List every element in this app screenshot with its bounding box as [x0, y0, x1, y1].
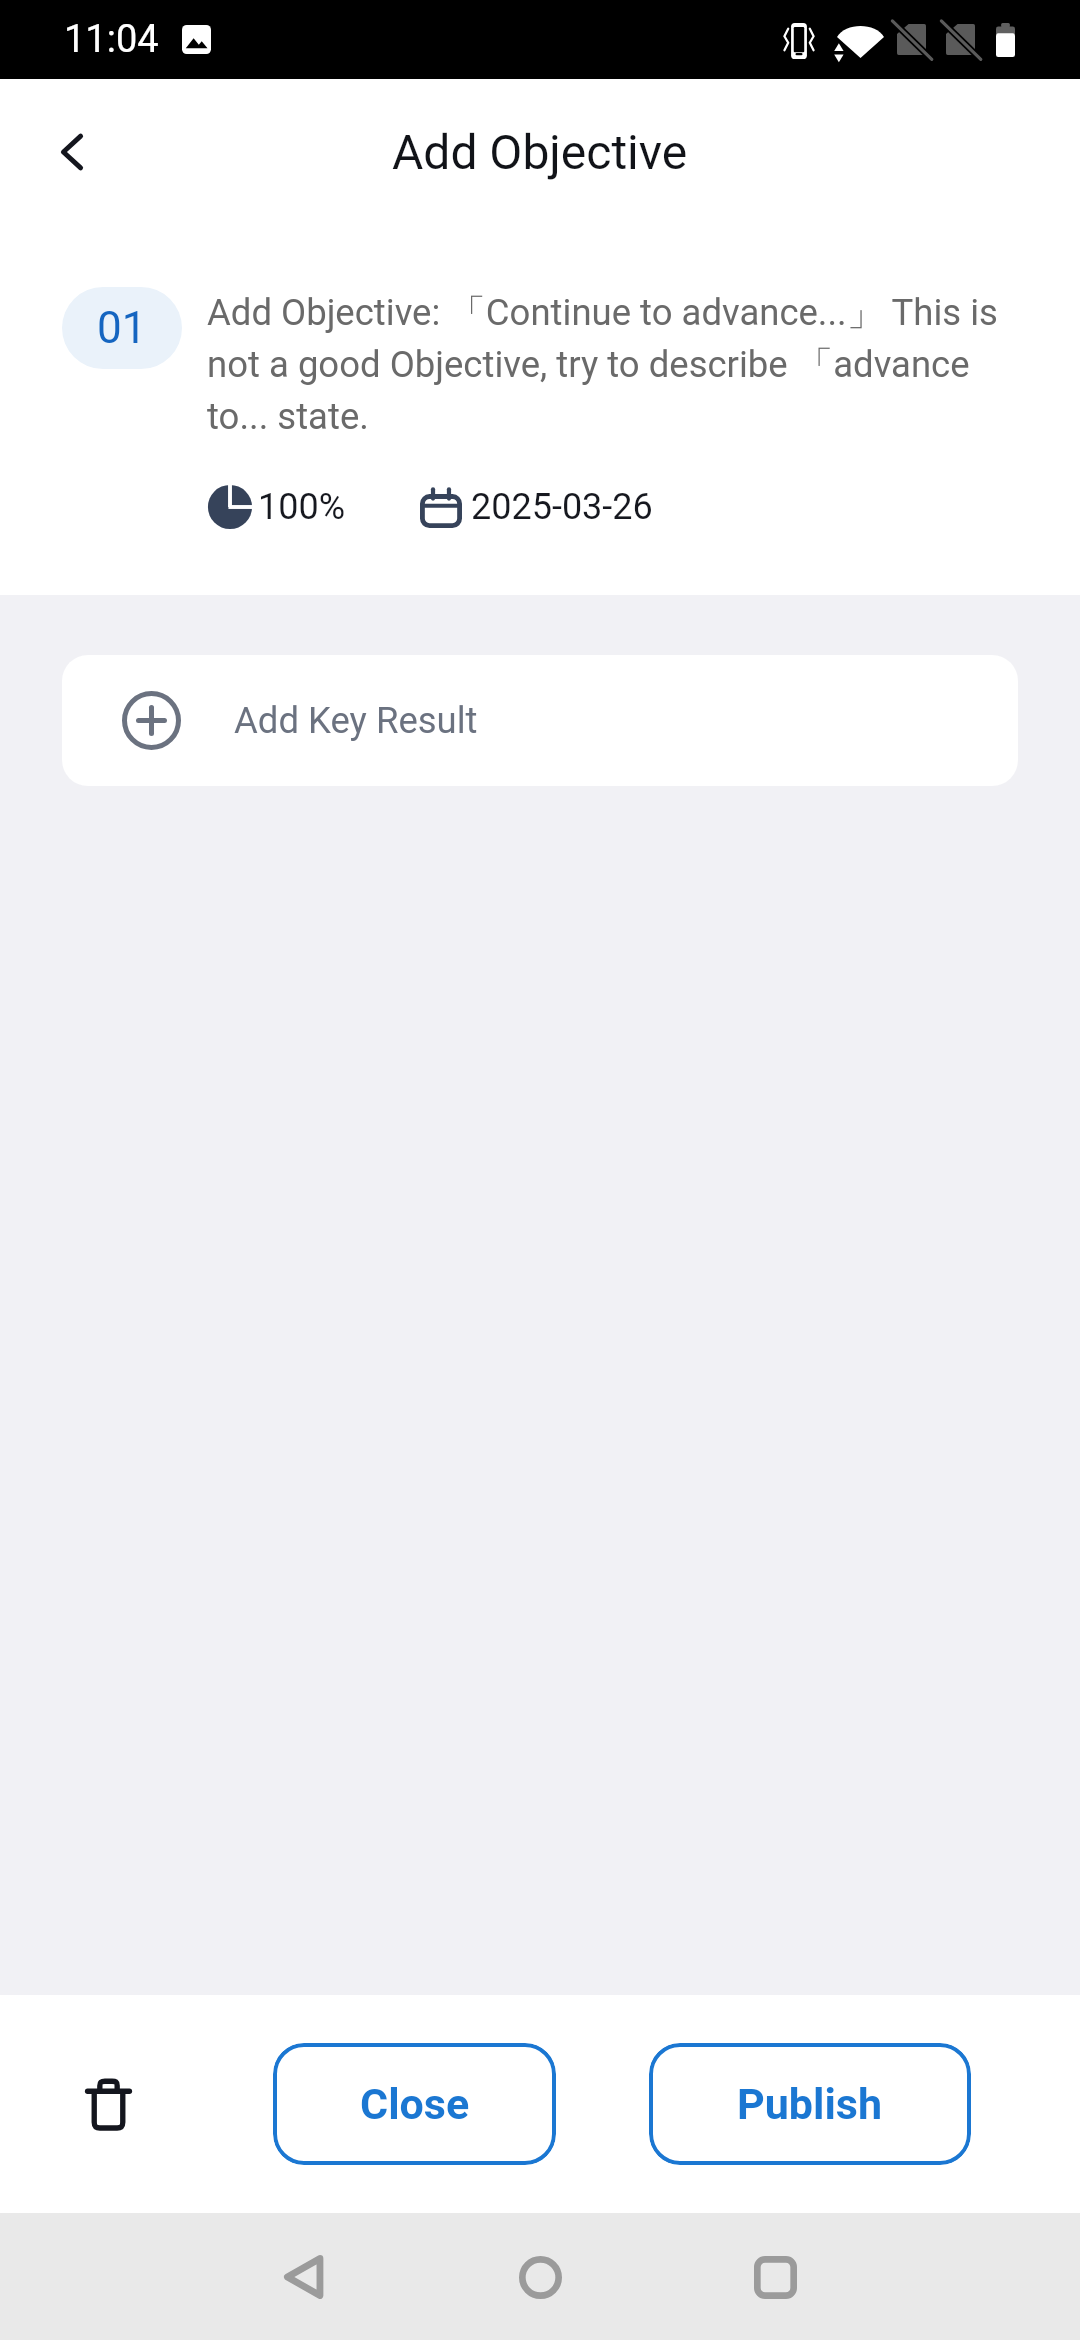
button[interactable]: Recents — [715, 2217, 835, 2337]
staticText: Publish — [737, 2079, 883, 2129]
staticText: Add Objective: 「Continue to advance...」 … — [207, 285, 1014, 439]
staticText: Close — [360, 2079, 470, 2129]
button[interactable]: Publish — [649, 2043, 971, 2165]
staticText: Add Objective — [392, 124, 688, 180]
staticText: 2025-03-26 — [471, 486, 653, 528]
button[interactable]: Home — [480, 2217, 600, 2337]
button[interactable]: Back — [245, 2217, 365, 2337]
staticText: 01 — [97, 302, 147, 354]
staticText: 11:04 — [64, 17, 159, 62]
button[interactable]: Delete — [40, 2036, 176, 2172]
staticText: 100% — [258, 486, 346, 528]
button[interactable]: Add Key Result — [62, 655, 1018, 786]
button[interactable]: Close — [273, 2043, 556, 2165]
button[interactable]: Back — [16, 96, 128, 208]
staticText: Add Key Result — [234, 699, 478, 742]
button[interactable]: 01 — [0, 225, 1080, 595]
